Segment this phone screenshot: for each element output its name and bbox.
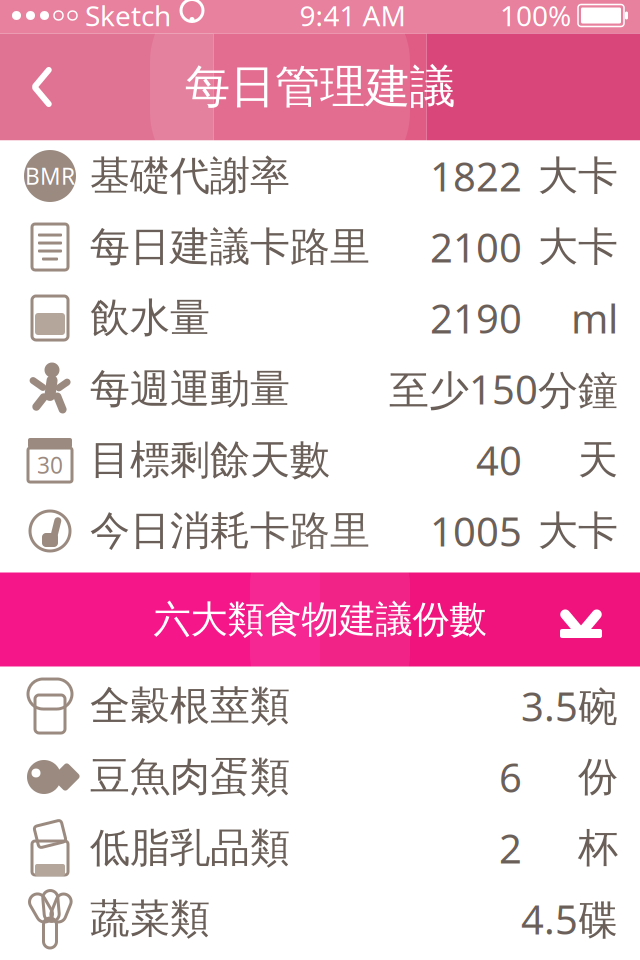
button[interactable]: Back	[14, 56, 70, 118]
button[interactable]: 豆魚肉蛋類	[0, 741, 640, 812]
staticText: 飲水量	[90, 293, 210, 342]
staticText: 六大類食物建議份數	[153, 597, 486, 642]
staticText: 杯	[578, 823, 618, 872]
button[interactable]: 六大類食物建議份數	[0, 572, 640, 666]
button[interactable]: 低脂乳品類	[0, 812, 640, 883]
staticText: 每日建議卡路里	[90, 222, 370, 271]
staticText: 30	[37, 450, 63, 480]
button[interactable]: 蔬菜類	[0, 883, 640, 954]
staticText: 1822	[430, 149, 522, 202]
staticText: Sketch	[85, 0, 171, 34]
button[interactable]: 今日消耗卡路里	[0, 495, 640, 566]
staticText: 2	[499, 821, 522, 874]
staticText: BMR	[25, 161, 75, 191]
button[interactable]: 飲水量	[0, 282, 640, 353]
staticText: 目標剩餘天數	[90, 435, 330, 484]
button[interactable]: 30	[0, 424, 640, 495]
staticText: 40	[476, 433, 522, 486]
staticText: 大卡	[538, 222, 618, 271]
staticText: 3.5碗	[521, 679, 618, 732]
button[interactable]: 全穀根莖類	[0, 670, 640, 741]
button[interactable]: BMR	[0, 140, 640, 211]
staticText: 大卡	[538, 506, 618, 555]
staticText: 1005	[430, 504, 522, 557]
staticText: 每週運動量	[90, 364, 290, 413]
staticText: 今日消耗卡路里	[90, 506, 370, 555]
staticText: 全穀根莖類	[90, 681, 290, 730]
staticText: 2100	[430, 220, 522, 273]
staticText: 低脂乳品類	[90, 823, 290, 872]
staticText: 9:41 AM	[299, 0, 405, 34]
staticText: 至少150分鐘	[389, 362, 618, 415]
staticText: 天	[578, 435, 618, 484]
button[interactable]: 每週運動量	[0, 353, 640, 424]
staticText: 份	[578, 752, 618, 801]
staticText: 每日管理建議	[185, 59, 455, 115]
staticText: 蔬菜類	[90, 894, 210, 943]
staticText: 2190	[430, 291, 522, 344]
staticText: 大卡	[538, 151, 618, 200]
staticText: 豆魚肉蛋類	[90, 752, 290, 801]
staticText: 4.5碟	[521, 892, 618, 945]
staticText: 6	[499, 750, 522, 803]
staticText: ml	[571, 291, 618, 344]
button[interactable]: 每日建議卡路里	[0, 211, 640, 282]
staticText: 基礎代謝率	[90, 151, 290, 200]
staticText: 100%	[500, 0, 571, 34]
